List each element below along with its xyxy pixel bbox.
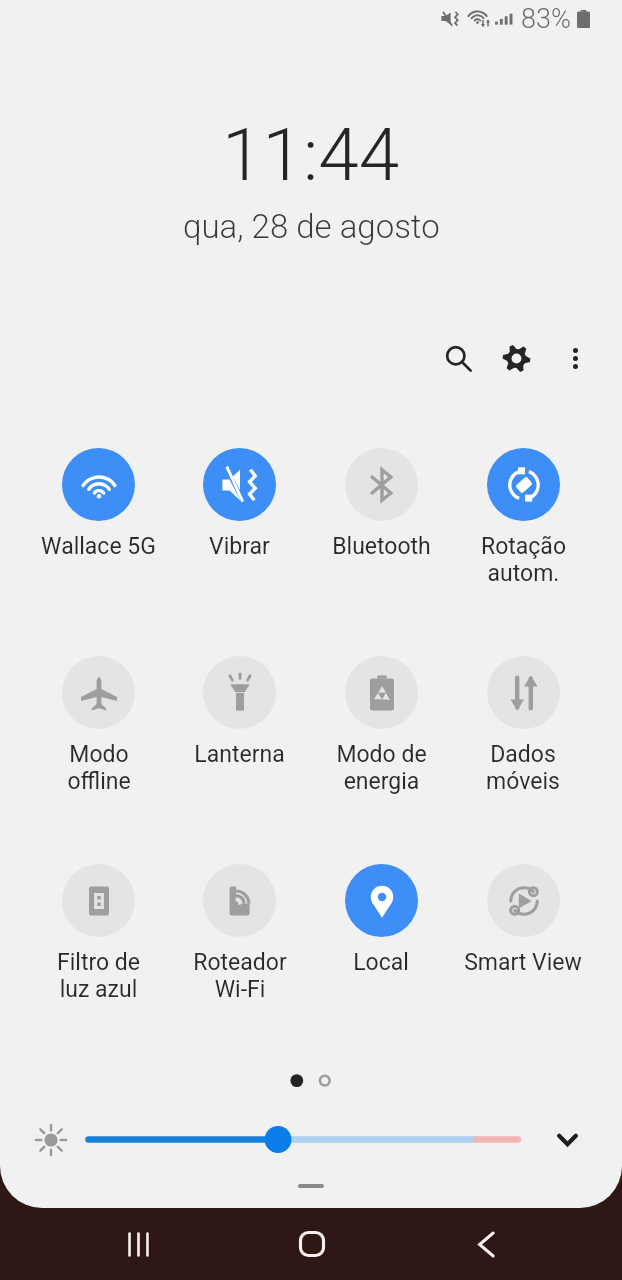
button[interactable]: Roteador Wi-Fi [169, 864, 310, 1072]
button[interactable]: Settings [488, 330, 544, 386]
staticText: Dados móveis [486, 741, 560, 795]
staticText: Lanterna [194, 741, 285, 768]
button[interactable]: Expand quick settings [535, 1110, 599, 1170]
staticText: Modo offline [67, 741, 131, 795]
staticText: Smart View [464, 949, 582, 976]
button[interactable]: Brightness [19, 1110, 83, 1170]
staticText: 11:44 [222, 112, 400, 198]
button[interactable]: Smart View [452, 864, 594, 1072]
staticText: qua, 28 de agosto [183, 207, 440, 246]
staticText: Bluetooth [332, 533, 431, 560]
staticText: Vibrar [209, 533, 270, 560]
button[interactable]: Filtro de luz azul [28, 864, 169, 1072]
button[interactable]: Wallace 5G [28, 448, 169, 656]
staticText: Modo de energia [336, 741, 427, 795]
staticText: Filtro de luz azul [57, 949, 140, 1003]
button[interactable]: Dados móveis [452, 656, 594, 864]
button[interactable]: Back [450, 1208, 522, 1280]
staticText: Rotação autom. [481, 533, 566, 587]
button[interactable]: Home [276, 1208, 348, 1280]
button[interactable]: Search [430, 330, 486, 386]
button[interactable]: Rotação autom. [452, 448, 594, 656]
staticText: Wallace 5G [41, 533, 156, 560]
staticText: Local [353, 949, 409, 976]
staticText: Roteador Wi-Fi [193, 949, 287, 1003]
staticText: 83% [521, 3, 571, 35]
button[interactable]: More options [547, 330, 603, 386]
button[interactable]: Modo offline [28, 656, 169, 864]
button[interactable]: Lanterna [169, 656, 310, 864]
button[interactable]: Modo de energia [310, 656, 452, 864]
button[interactable]: Local [310, 864, 452, 1072]
button[interactable]: Vibrar [169, 448, 310, 656]
button[interactable]: Bluetooth [310, 448, 452, 656]
button[interactable]: Recents [102, 1208, 174, 1280]
